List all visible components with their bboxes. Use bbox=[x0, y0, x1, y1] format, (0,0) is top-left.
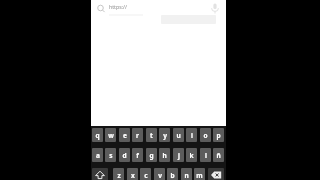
staticText: f bbox=[136, 151, 139, 160]
staticText: s bbox=[109, 151, 113, 160]
button[interactable]: m bbox=[194, 168, 205, 180]
staticText: n bbox=[184, 171, 189, 180]
button[interactable]: b bbox=[167, 168, 178, 180]
button[interactable]: l bbox=[200, 148, 211, 162]
button[interactable]: y bbox=[159, 128, 170, 142]
staticText: d bbox=[122, 151, 127, 160]
button[interactable]: q bbox=[92, 128, 103, 142]
button[interactable]: s bbox=[105, 148, 116, 162]
button[interactable]: g bbox=[146, 148, 157, 162]
button[interactable]: u bbox=[173, 128, 184, 142]
staticText: j bbox=[178, 151, 180, 160]
button[interactable] bbox=[209, 2, 221, 15]
staticText: a bbox=[96, 151, 100, 160]
button[interactable] bbox=[92, 168, 108, 180]
button[interactable]: h bbox=[159, 148, 170, 162]
button[interactable]: r bbox=[132, 128, 143, 142]
button[interactable]: o bbox=[200, 128, 211, 142]
button[interactable]: ñ bbox=[213, 148, 224, 162]
button[interactable]: t bbox=[146, 128, 157, 142]
button[interactable]: n bbox=[181, 168, 192, 180]
staticText: h bbox=[162, 151, 167, 160]
staticText: https:// bbox=[109, 3, 127, 10]
staticText: r bbox=[136, 131, 139, 140]
button[interactable]: f bbox=[132, 148, 143, 162]
staticText: z bbox=[117, 171, 121, 180]
button[interactable]: w bbox=[105, 128, 116, 142]
staticText: x bbox=[131, 171, 135, 180]
staticText: c bbox=[144, 171, 148, 180]
staticText: b bbox=[170, 171, 175, 180]
staticText: p bbox=[216, 131, 221, 140]
staticText: i bbox=[191, 131, 193, 140]
button[interactable]: z bbox=[113, 168, 124, 180]
staticText: q bbox=[95, 131, 100, 140]
button[interactable]: i bbox=[186, 128, 197, 142]
button[interactable]: p bbox=[213, 128, 224, 142]
button[interactable]: k bbox=[186, 148, 197, 162]
staticText: v bbox=[158, 171, 162, 180]
staticText: t bbox=[150, 131, 153, 140]
staticText: k bbox=[189, 151, 194, 160]
staticText: e bbox=[123, 131, 127, 140]
button[interactable] bbox=[208, 168, 224, 180]
button[interactable]: e bbox=[119, 128, 130, 142]
staticText: w bbox=[108, 131, 114, 140]
button[interactable]: d bbox=[119, 148, 130, 162]
staticText: l bbox=[205, 151, 207, 160]
staticText: u bbox=[176, 131, 181, 140]
button[interactable]: x bbox=[127, 168, 138, 180]
button[interactable]: a bbox=[92, 148, 103, 162]
staticText: o bbox=[203, 131, 208, 140]
staticText: m bbox=[196, 171, 203, 180]
staticText: y bbox=[163, 131, 167, 140]
button[interactable]: https:// bbox=[109, 3, 139, 10]
button[interactable] bbox=[95, 2, 107, 14]
button[interactable]: c bbox=[140, 168, 151, 180]
staticText: ñ bbox=[216, 151, 221, 160]
staticText: g bbox=[149, 151, 154, 160]
button[interactable]: v bbox=[154, 168, 165, 180]
button[interactable]: j bbox=[173, 148, 184, 162]
